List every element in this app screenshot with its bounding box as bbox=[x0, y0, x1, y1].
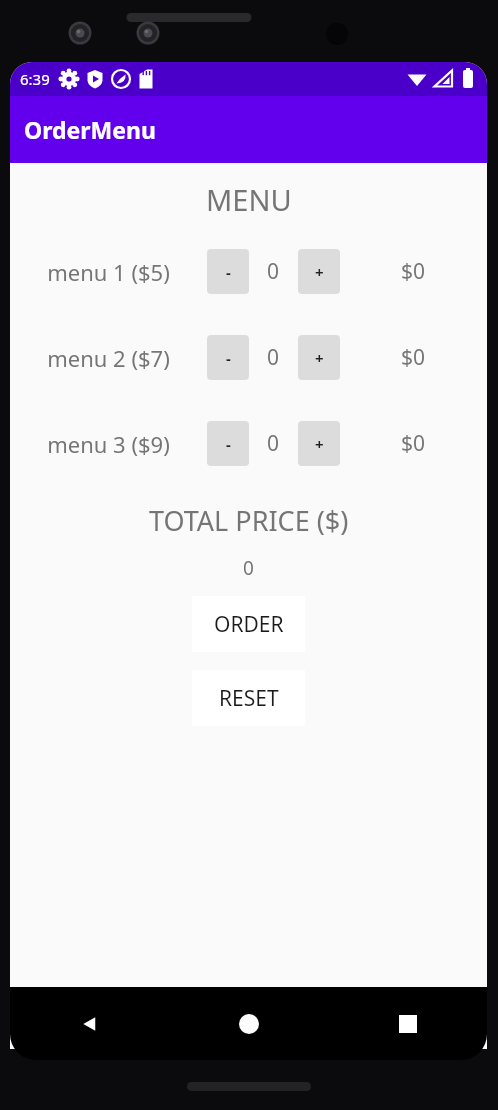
staticText: menu 2 ($7) bbox=[47, 343, 170, 373]
staticText: 6:39 bbox=[20, 69, 50, 89]
button[interactable]: Increase bbox=[298, 421, 340, 466]
staticText: 0 bbox=[243, 555, 254, 581]
staticText: 0 bbox=[267, 257, 280, 286]
staticText: RESET bbox=[219, 684, 279, 713]
staticText: + bbox=[315, 434, 324, 454]
staticText: menu 1 ($5) bbox=[47, 257, 170, 287]
button[interactable]: Increase bbox=[298, 249, 340, 294]
staticText: - bbox=[226, 348, 231, 368]
staticText: menu 3 ($9) bbox=[47, 429, 170, 459]
button[interactable]: Back bbox=[10, 987, 169, 1060]
staticText: + bbox=[315, 348, 324, 368]
staticText: + bbox=[315, 262, 324, 282]
staticText: MENU bbox=[206, 180, 292, 219]
staticText: OrderMenu bbox=[24, 114, 156, 145]
staticText: $0 bbox=[401, 343, 426, 372]
button[interactable]: RESET bbox=[192, 670, 305, 726]
staticText: - bbox=[226, 262, 231, 282]
staticText: TOTAL PRICE ($) bbox=[149, 502, 349, 539]
staticText: - bbox=[226, 434, 231, 454]
staticText: ORDER bbox=[214, 610, 284, 639]
staticText: 0 bbox=[267, 343, 280, 372]
button[interactable]: Decrease bbox=[207, 335, 249, 380]
staticText: 0 bbox=[267, 429, 280, 458]
button[interactable]: ORDER bbox=[192, 596, 305, 652]
staticText: $0 bbox=[401, 257, 426, 286]
button[interactable]: Recent apps bbox=[328, 987, 487, 1060]
button[interactable]: Decrease bbox=[207, 421, 249, 466]
staticText: $0 bbox=[401, 429, 426, 458]
button[interactable]: Decrease bbox=[207, 249, 249, 294]
button[interactable]: Increase bbox=[298, 335, 340, 380]
button[interactable]: Home bbox=[169, 987, 328, 1060]
